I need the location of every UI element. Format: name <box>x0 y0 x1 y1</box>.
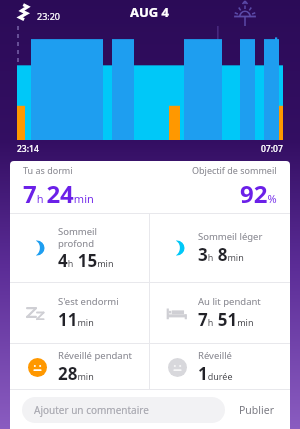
staticText: Sommeil profond <box>58 225 97 249</box>
button[interactable]: Au lit pendant <box>150 283 290 343</box>
button[interactable]: Publier <box>235 397 278 423</box>
staticText: 23:14 <box>17 143 39 155</box>
staticText: Réveillé <box>198 349 232 362</box>
button[interactable]: Sommeil léger <box>150 214 290 282</box>
staticText: AUG 4 <box>130 3 170 21</box>
button[interactable]: S'est endormi <box>10 283 149 343</box>
button[interactable]: Réveillé <box>150 344 290 389</box>
staticText: 28min <box>58 362 94 385</box>
button[interactable]: Sommeil profond <box>10 214 149 282</box>
staticText: Ajouter un commentaire <box>34 403 149 417</box>
staticText: 3h 8min <box>198 243 244 266</box>
staticText: Tu as dormi <box>23 164 73 176</box>
staticText: S'est endormi <box>58 295 119 308</box>
staticText: 7h 24min <box>23 177 94 210</box>
staticText: 1durée <box>198 362 233 385</box>
staticText: 4h 15min <box>58 249 114 272</box>
button[interactable]: Ajouter un commentaire <box>22 397 225 423</box>
staticText: 07:07 <box>261 143 283 155</box>
staticText: 92% <box>240 177 277 210</box>
staticText: Objectif de sommeil <box>192 164 277 176</box>
button[interactable]: Réveillé pendant <box>10 344 149 389</box>
staticText: 23:20 <box>37 10 61 22</box>
staticText: Publier <box>239 403 274 417</box>
other: Sunrise <box>232 1 258 26</box>
staticText: 11min <box>58 308 94 331</box>
staticText: Réveillé pendant <box>58 349 132 362</box>
staticText: Sommeil léger <box>198 230 263 243</box>
staticText: 7h 51min <box>198 308 254 331</box>
staticText: Au lit pendant <box>198 295 261 308</box>
